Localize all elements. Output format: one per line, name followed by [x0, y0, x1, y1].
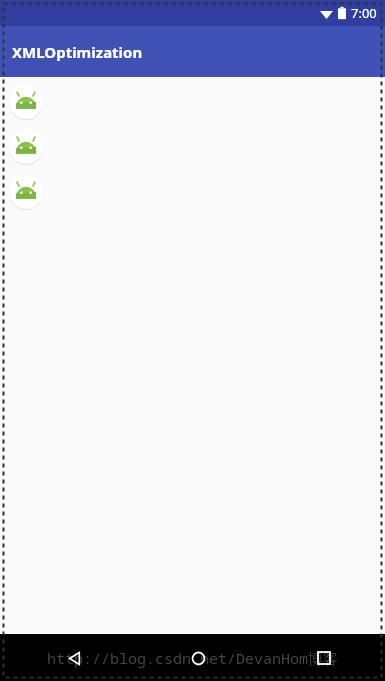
- staticText: http://blog.csdn.net/DevanHom博客: [0, 648, 385, 668]
- button[interactable]: [7, 128, 45, 166]
- button[interactable]: [7, 173, 45, 211]
- button[interactable]: [7, 83, 45, 121]
- staticText: 7:00: [351, 4, 377, 22]
- button[interactable]: Home: [182, 642, 214, 674]
- button[interactable]: Back: [58, 642, 90, 674]
- staticText: XMLOptimization: [12, 42, 143, 62]
- button[interactable]: Recents: [308, 642, 340, 674]
